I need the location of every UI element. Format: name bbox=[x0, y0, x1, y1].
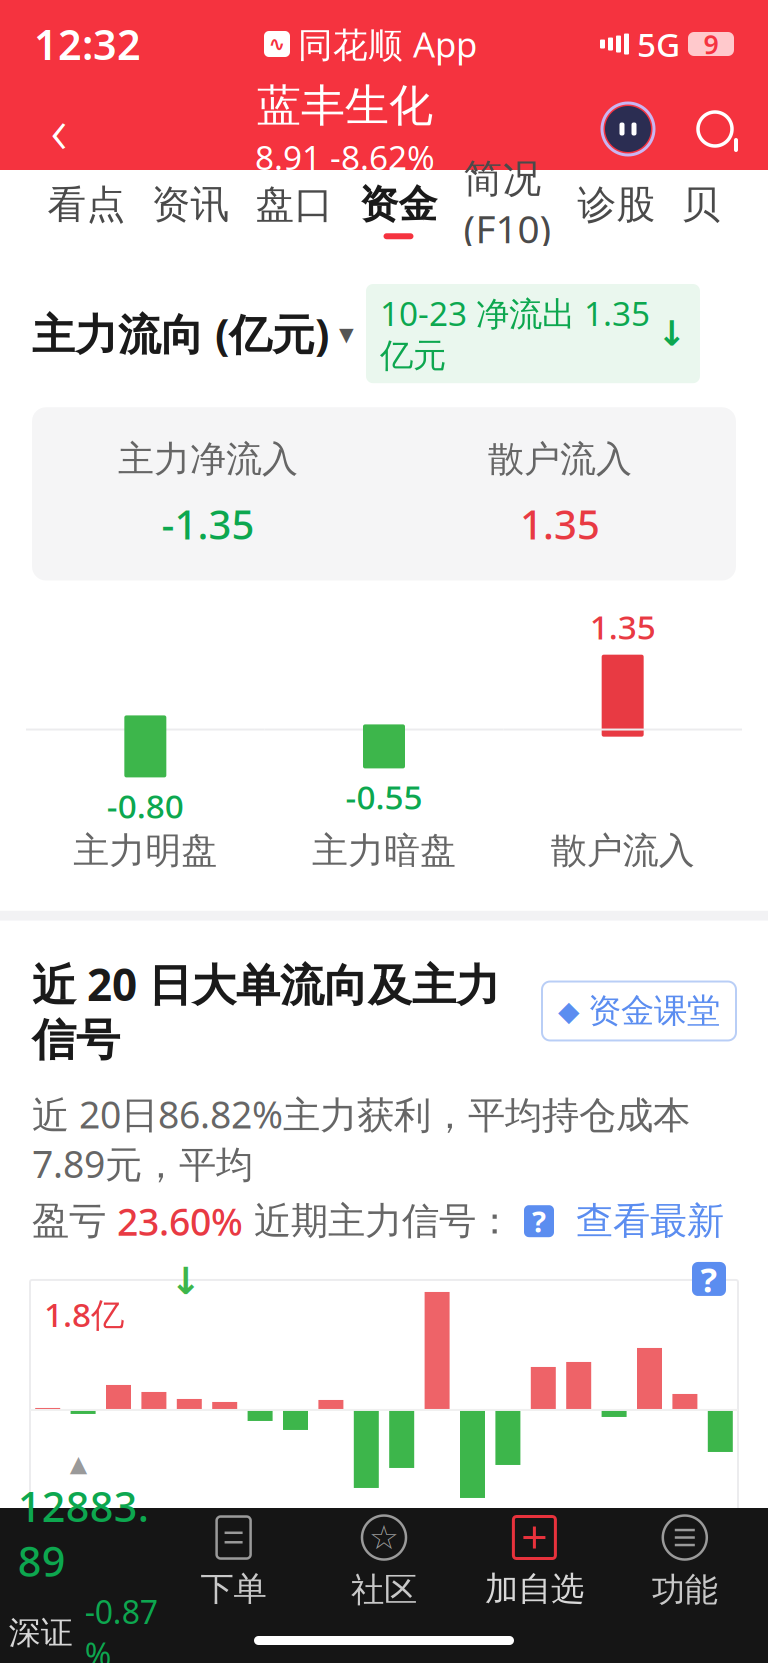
staticText: 1.8亿 bbox=[44, 1292, 124, 1336]
staticText: 12883.89 bbox=[18, 1478, 149, 1588]
staticText: 蓝丰生化 bbox=[257, 79, 433, 133]
staticText: 8.91 -8.62% bbox=[255, 135, 435, 179]
staticText: ☆ bbox=[369, 1519, 399, 1556]
staticText: -1.9亿 bbox=[44, 1514, 135, 1558]
staticText: 看点 bbox=[47, 181, 125, 228]
button[interactable]: ☆ bbox=[309, 1515, 459, 1610]
staticText: 同花顺 App bbox=[298, 21, 477, 67]
button[interactable]: 资讯 bbox=[138, 170, 242, 246]
button[interactable]: 看点 bbox=[34, 170, 138, 246]
button[interactable]: 搜索 bbox=[686, 100, 744, 158]
staticText: 贝 bbox=[681, 181, 720, 228]
button[interactable]: 查看最新 bbox=[554, 1198, 724, 1244]
staticText: ↓ bbox=[657, 314, 686, 353]
staticText: 加自选 bbox=[485, 1568, 584, 1609]
staticText: ‹ bbox=[50, 86, 67, 171]
staticText: 功能 bbox=[652, 1569, 718, 1610]
staticText: 主力净流入 bbox=[118, 437, 298, 481]
staticText: 资金 bbox=[359, 181, 437, 228]
staticText: 1.35 bbox=[590, 604, 656, 649]
button[interactable]: 说明 bbox=[692, 1262, 726, 1296]
staticText: 盈亏 bbox=[32, 1198, 117, 1244]
button[interactable]: 资金 bbox=[346, 170, 450, 246]
button[interactable]: 下单 bbox=[158, 1516, 309, 1609]
staticText: 1.35 bbox=[520, 497, 600, 550]
staticText: 09-18 bbox=[32, 1600, 114, 1642]
staticText: 资讯 bbox=[151, 181, 229, 228]
staticText: 23.60% bbox=[117, 1196, 243, 1246]
staticText: 近 20日86.82%主力获利，平均持仓成本 7.89元，平均 bbox=[32, 1089, 690, 1188]
button[interactable]: 简况(F10) bbox=[450, 170, 564, 246]
staticText: 查看最新 bbox=[554, 1198, 724, 1244]
staticText: ▲ bbox=[70, 1451, 87, 1476]
button[interactable]: 主力流向 (亿元) bbox=[32, 305, 354, 362]
staticText: 5G bbox=[637, 22, 680, 66]
staticText: ∿ bbox=[268, 33, 285, 55]
staticText: 主力暗盘 bbox=[312, 828, 456, 873]
staticText: 主力明盘 bbox=[73, 828, 217, 873]
staticText: 10-23 净流出 1.35 亿元 bbox=[380, 291, 650, 376]
staticText: ◆ bbox=[558, 995, 580, 1027]
staticText: 散户流入 bbox=[488, 437, 632, 481]
button[interactable]: ◆ bbox=[542, 981, 736, 1040]
staticText: 资金课堂 bbox=[588, 990, 720, 1031]
button[interactable]: 贝 bbox=[668, 170, 733, 246]
button[interactable]: 诊股 bbox=[564, 170, 668, 246]
staticText: 主力流向 (亿元) bbox=[32, 305, 329, 362]
button[interactable]: 盘口 bbox=[242, 170, 346, 246]
staticText: 散户流入 bbox=[551, 828, 695, 873]
staticText: ↓ bbox=[170, 1260, 201, 1302]
staticText: 诊股 bbox=[577, 181, 655, 228]
staticText: ? bbox=[532, 1202, 546, 1241]
staticText: 12:32 bbox=[34, 17, 141, 71]
button[interactable]: 加自选 bbox=[459, 1516, 610, 1609]
button[interactable]: 深证指数 bbox=[8, 1451, 158, 1663]
staticText: 下单 bbox=[201, 1568, 267, 1609]
staticText: 近期主力信号： bbox=[243, 1198, 524, 1244]
staticText: ? bbox=[700, 1256, 717, 1302]
staticText: 9 bbox=[703, 26, 718, 62]
staticText: -0.55 bbox=[345, 774, 422, 819]
staticText: 深证 bbox=[9, 1613, 73, 1652]
button[interactable]: 智能助手 bbox=[596, 97, 660, 161]
staticText: 社区 bbox=[351, 1569, 417, 1610]
staticText: -1.35 bbox=[161, 497, 254, 550]
staticText: 简况(F10) bbox=[463, 155, 551, 254]
staticText: 10-23 bbox=[654, 1600, 736, 1642]
button[interactable]: 返回 bbox=[24, 94, 94, 164]
button[interactable]: 功能 bbox=[610, 1515, 760, 1610]
staticText: -0.80 bbox=[107, 783, 184, 828]
staticText: 盘口 bbox=[255, 181, 333, 228]
staticText: 近 20 日大单流向及主力信号 bbox=[32, 955, 500, 1067]
staticText: ▾ bbox=[339, 317, 354, 350]
staticText: -0.87% bbox=[85, 1590, 158, 1663]
